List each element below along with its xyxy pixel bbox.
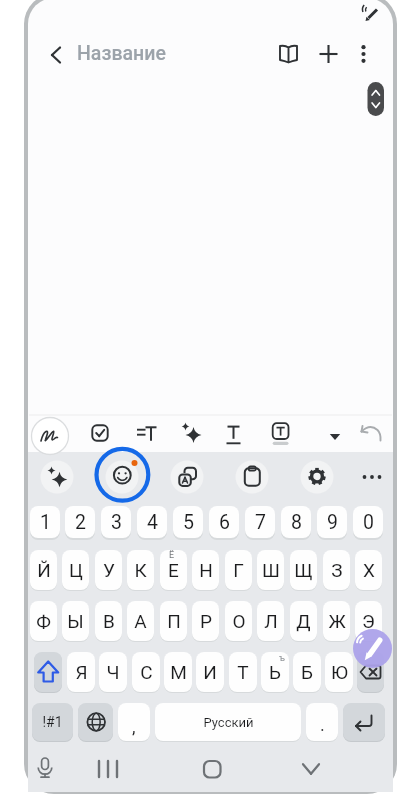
staticText: Ф	[36, 610, 51, 632]
button[interactable]: Т	[229, 652, 257, 692]
staticText: Й	[37, 559, 51, 581]
button[interactable]: Ц	[62, 550, 89, 590]
button[interactable]: Г	[225, 550, 252, 590]
staticText: !#1	[42, 714, 63, 730]
staticText: С	[140, 661, 153, 683]
staticText: Я	[75, 661, 88, 683]
button[interactable]: 1	[30, 506, 60, 538]
button[interactable]: Ю	[325, 652, 353, 692]
button[interactable]: Э	[355, 601, 382, 641]
button[interactable]	[343, 703, 385, 741]
button[interactable]	[34, 652, 62, 692]
button[interactable]	[171, 461, 203, 493]
button[interactable]: 3	[101, 506, 131, 538]
button[interactable]: Б	[293, 652, 321, 692]
button[interactable]	[41, 461, 73, 493]
button[interactable]	[350, 40, 377, 67]
button[interactable]	[356, 461, 388, 493]
staticText: Ю	[331, 661, 348, 683]
staticText: М	[170, 661, 187, 683]
button[interactable]	[219, 418, 249, 448]
button[interactable]	[320, 422, 348, 450]
staticText: О	[232, 610, 246, 632]
staticText: ,	[132, 716, 136, 737]
staticText: 6	[219, 511, 230, 534]
button[interactable]: Х	[355, 550, 382, 590]
staticText: Б	[301, 661, 313, 683]
button[interactable]: Ш	[257, 550, 284, 590]
button[interactable]	[40, 40, 70, 70]
button[interactable]: Е	[160, 550, 187, 590]
staticText: Ж	[328, 610, 346, 632]
button[interactable]	[274, 40, 303, 69]
button[interactable]: Н	[192, 550, 219, 590]
button[interactable]: !#1	[32, 703, 73, 741]
button[interactable]: Ы	[62, 601, 89, 641]
staticText: И	[203, 661, 217, 683]
button[interactable]: 5	[173, 506, 203, 538]
staticText: Ё	[169, 550, 175, 561]
button[interactable]: О	[225, 601, 252, 641]
staticText: Ч	[106, 661, 120, 683]
staticText: Х	[363, 559, 375, 581]
staticText: А	[134, 610, 147, 632]
button[interactable]: .	[306, 703, 338, 741]
staticText: 9	[327, 511, 338, 534]
staticText: У	[103, 559, 115, 581]
staticText: Э	[362, 610, 375, 632]
button[interactable]: 0	[353, 506, 383, 538]
button[interactable]	[314, 40, 343, 69]
staticText: 3	[111, 511, 122, 534]
staticText: В	[103, 610, 115, 632]
button[interactable]	[236, 461, 268, 493]
staticText: Ь	[269, 661, 281, 683]
button[interactable]: Ж	[323, 601, 350, 641]
button[interactable]	[78, 703, 113, 741]
staticText: .	[320, 714, 325, 735]
button[interactable]: К	[127, 550, 154, 590]
button[interactable]: Русский	[155, 703, 301, 741]
staticText: Л	[264, 610, 278, 632]
button[interactable]: Р	[192, 601, 219, 641]
button[interactable]: Ч	[99, 652, 127, 692]
button[interactable]	[353, 629, 392, 668]
button[interactable]: ,	[118, 703, 150, 741]
button[interactable]	[176, 418, 206, 448]
button[interactable]: 9	[317, 506, 347, 538]
button[interactable]: Д	[290, 601, 317, 641]
button[interactable]: 4	[137, 506, 167, 538]
staticText: К	[134, 559, 147, 581]
button[interactable]	[355, 420, 383, 448]
button[interactable]: 2	[65, 506, 95, 538]
button[interactable]: У	[95, 550, 122, 590]
button[interactable]	[106, 461, 138, 493]
button[interactable]	[357, 652, 384, 692]
button[interactable]: 6	[209, 506, 239, 538]
button[interactable]: М	[164, 652, 192, 692]
button[interactable]: 7	[245, 506, 275, 538]
staticText: 8	[291, 511, 302, 534]
button[interactable]: А	[127, 601, 154, 641]
staticText: 2	[75, 511, 86, 534]
button[interactable]	[31, 417, 69, 455]
staticText: 1	[40, 511, 51, 534]
button[interactable]: Ь	[261, 652, 289, 692]
staticText: Е	[168, 559, 179, 581]
button[interactable]	[85, 418, 115, 448]
button[interactable]: П	[160, 601, 187, 641]
button[interactable]	[131, 418, 161, 448]
button[interactable]: С	[132, 652, 160, 692]
button[interactable]	[265, 418, 295, 448]
button[interactable]: Я	[67, 652, 95, 692]
button[interactable]: И	[196, 652, 224, 692]
button[interactable]: Щ	[290, 550, 317, 590]
staticText: Ц	[69, 559, 83, 581]
button[interactable]: Ф	[30, 601, 57, 641]
staticText: Г	[233, 559, 244, 581]
button[interactable]	[301, 461, 333, 493]
button[interactable]: В	[95, 601, 122, 641]
button[interactable]: Л	[257, 601, 284, 641]
button[interactable]: Й	[30, 550, 57, 590]
button[interactable]: 8	[281, 506, 311, 538]
button[interactable]: З	[323, 550, 350, 590]
